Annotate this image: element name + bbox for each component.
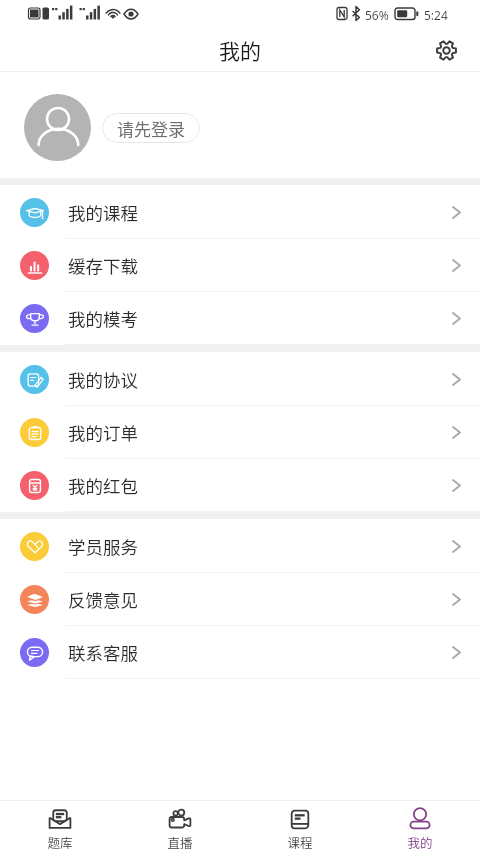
button[interactable]: 我的订单 (0, 406, 480, 459)
button[interactable]: Settings (431, 35, 461, 65)
button[interactable]: 缓存下载 (0, 239, 480, 292)
staticText: 反馈意见 (68, 587, 138, 612)
button[interactable]: 我的模考 (0, 292, 480, 345)
staticText: 缓存下载 (68, 253, 138, 278)
staticText: 我的课程 (68, 200, 138, 225)
staticText: 课程 (287, 833, 313, 851)
staticText: 请先登录 (117, 116, 185, 141)
staticText: 5:24 (424, 7, 448, 23)
staticText: 我的 (407, 833, 433, 851)
button[interactable]: Avatar (24, 94, 91, 161)
staticText: 我的协议 (68, 367, 138, 392)
staticText: 联系客服 (68, 640, 138, 665)
button[interactable]: 我的协议 (0, 352, 480, 406)
staticText: 我的模考 (68, 306, 138, 331)
button[interactable]: 反馈意见 (0, 573, 480, 626)
staticText: 题库 (47, 833, 73, 851)
staticText: 我的红包 (68, 473, 138, 498)
button[interactable]: 学员服务 (0, 519, 480, 573)
button[interactable]: 我的课程 (0, 185, 480, 239)
button[interactable]: 题库 (0, 801, 120, 853)
staticText: 我的订单 (68, 420, 138, 445)
button[interactable]: 课程 (240, 801, 360, 853)
staticText: 我的 (219, 35, 261, 65)
staticText: 学员服务 (68, 534, 138, 559)
button[interactable]: 我的 (360, 801, 480, 853)
staticText: 56% (365, 7, 389, 23)
button[interactable]: 联系客服 (0, 626, 480, 679)
button[interactable]: 请先登录 (102, 113, 200, 143)
button[interactable]: 我的红包 (0, 459, 480, 512)
button[interactable]: 直播 (120, 801, 240, 853)
staticText: 直播 (167, 833, 193, 851)
